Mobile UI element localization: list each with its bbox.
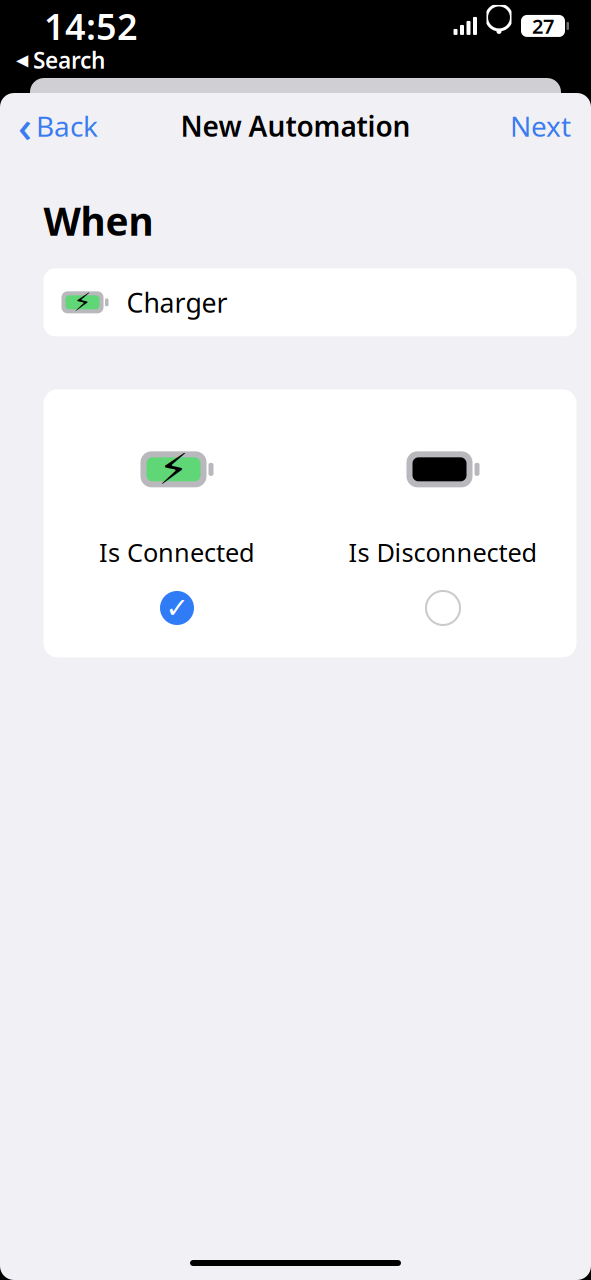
staticText: Back [36, 107, 98, 145]
staticText: Charger [126, 285, 227, 320]
staticText: 27 [532, 13, 554, 39]
button[interactable]: Is Disconnected [310, 389, 576, 657]
button[interactable]: ◀ [0, 45, 105, 75]
staticText: Search [33, 45, 105, 75]
button[interactable]: Next [490, 99, 591, 153]
staticText: When [43, 195, 153, 246]
staticText: ⚡︎ [158, 445, 188, 493]
button[interactable]: ⚡︎ [44, 389, 310, 657]
staticText: ‹ [18, 98, 32, 154]
staticText: ⚡︎ [73, 288, 91, 317]
staticText: 14:52 [44, 2, 138, 50]
staticText: ✓ [165, 592, 188, 624]
staticText: New Automation [180, 107, 410, 145]
staticText: Is Disconnected [348, 535, 537, 569]
staticText: Next [510, 107, 571, 145]
staticText: ◀ [16, 51, 28, 69]
button[interactable]: ‹ [0, 90, 116, 162]
button[interactable]: ⚡︎ [43, 268, 576, 336]
staticText: Is Connected [99, 535, 255, 569]
